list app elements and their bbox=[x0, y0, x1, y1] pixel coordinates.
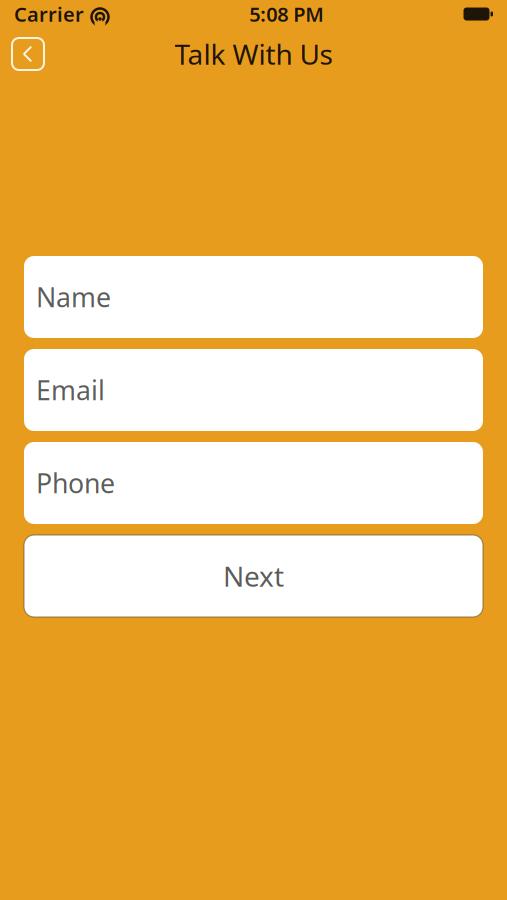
staticText: Talk With Us bbox=[174, 35, 332, 73]
staticText: Email bbox=[36, 372, 105, 408]
staticText: Next bbox=[223, 557, 284, 595]
button[interactable]: Back bbox=[12, 38, 44, 70]
staticText: Phone bbox=[36, 465, 115, 501]
staticText: Name bbox=[36, 279, 111, 315]
button[interactable]: Email bbox=[24, 349, 483, 431]
staticText: 5:08 PM bbox=[249, 1, 324, 27]
staticText: Carrier bbox=[14, 1, 84, 27]
button[interactable]: Name bbox=[24, 256, 483, 338]
button[interactable]: Next bbox=[24, 535, 483, 617]
button[interactable]: Phone bbox=[24, 442, 483, 524]
